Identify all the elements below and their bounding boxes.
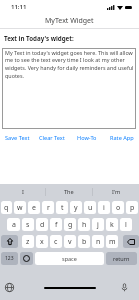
- button[interactable]: Next keyboard: [5, 283, 14, 292]
- staticText: o: [116, 203, 121, 213]
- staticText: I: [22, 188, 24, 196]
- staticText: My Text in today's widget goes here. Thi…: [5, 49, 134, 80]
- staticText: How-To: [77, 134, 97, 142]
- button[interactable]: l: [120, 218, 132, 231]
- staticText: p: [130, 203, 135, 213]
- button[interactable]: return: [106, 252, 137, 265]
- staticText: c: [54, 237, 58, 247]
- staticText: b: [82, 237, 87, 247]
- staticText: space: [62, 255, 77, 262]
- staticText: i: [103, 203, 105, 213]
- staticText: r: [47, 203, 50, 213]
- staticText: The: [64, 188, 74, 196]
- button[interactable]: 123: [1, 252, 18, 265]
- button[interactable]: space: [35, 252, 104, 265]
- button[interactable]: I'm: [93, 184, 139, 200]
- button[interactable]: Rate App: [104, 133, 139, 143]
- staticText: v: [68, 237, 72, 247]
- button[interactable]: I: [0, 184, 45, 200]
- staticText: l: [125, 220, 127, 230]
- staticText: h: [82, 220, 87, 230]
- staticText: a: [12, 220, 16, 230]
- button[interactable]: o: [112, 201, 124, 214]
- button[interactable]: Clear Text: [34, 133, 69, 143]
- staticText: I'm: [112, 188, 121, 196]
- staticText: return: [113, 255, 130, 262]
- staticText: MyText Widget: [45, 16, 94, 26]
- staticText: w: [17, 203, 23, 213]
- staticText: k: [110, 220, 114, 230]
- button[interactable]: u: [84, 201, 96, 214]
- button[interactable]: b: [78, 235, 90, 248]
- button[interactable]: My Text in today's widget goes here. Thi…: [2, 48, 136, 129]
- staticText: g: [68, 220, 73, 230]
- button[interactable]: p: [126, 201, 138, 214]
- staticText: Clear Text: [39, 134, 65, 142]
- staticText: s: [26, 220, 30, 230]
- button[interactable]: k: [106, 218, 118, 231]
- button[interactable]: Emoji: [20, 252, 33, 265]
- button[interactable]: g: [64, 218, 76, 231]
- button[interactable]: y: [70, 201, 82, 214]
- button[interactable]: f: [50, 218, 62, 231]
- button[interactable]: How-To: [69, 133, 104, 143]
- button[interactable]: v: [64, 235, 76, 248]
- staticText: q: [4, 203, 9, 213]
- staticText: Text in Today's widget:: [4, 34, 74, 42]
- button[interactable]: t: [56, 201, 68, 214]
- button[interactable]: d: [36, 218, 48, 231]
- button[interactable]: q: [1, 201, 12, 214]
- button[interactable]: s: [22, 218, 34, 231]
- button[interactable]: x: [36, 235, 48, 248]
- staticText: 11:11: [11, 3, 27, 11]
- button[interactable]: Shift: [1, 235, 18, 248]
- button[interactable]: a: [7, 218, 20, 231]
- staticText: u: [88, 203, 93, 213]
- button[interactable]: z: [22, 235, 34, 248]
- button[interactable]: The: [46, 184, 92, 200]
- staticText: d: [40, 220, 45, 230]
- button[interactable]: e: [28, 201, 40, 214]
- staticText: t: [61, 203, 64, 213]
- staticText: 123: [5, 255, 14, 262]
- staticText: Rate App: [110, 134, 134, 142]
- staticText: f: [55, 220, 58, 230]
- staticText: j: [97, 220, 99, 230]
- button[interactable]: Save Text: [0, 133, 34, 143]
- button[interactable]: h: [78, 218, 90, 231]
- button[interactable]: w: [14, 201, 26, 214]
- staticText: z: [26, 237, 30, 247]
- button[interactable]: c: [50, 235, 62, 248]
- staticText: Save Text: [5, 134, 30, 142]
- staticText: n: [96, 237, 101, 247]
- button[interactable]: Backspace: [123, 235, 139, 248]
- staticText: y: [74, 203, 78, 213]
- staticText: x: [40, 237, 44, 247]
- button[interactable]: i: [98, 201, 110, 214]
- button[interactable]: r: [42, 201, 54, 214]
- button[interactable]: Dictate: [120, 283, 129, 292]
- button[interactable]: m: [106, 235, 118, 248]
- staticText: m: [109, 237, 116, 247]
- staticText: e: [32, 203, 36, 213]
- button[interactable]: j: [92, 218, 104, 231]
- button[interactable]: n: [92, 235, 104, 248]
